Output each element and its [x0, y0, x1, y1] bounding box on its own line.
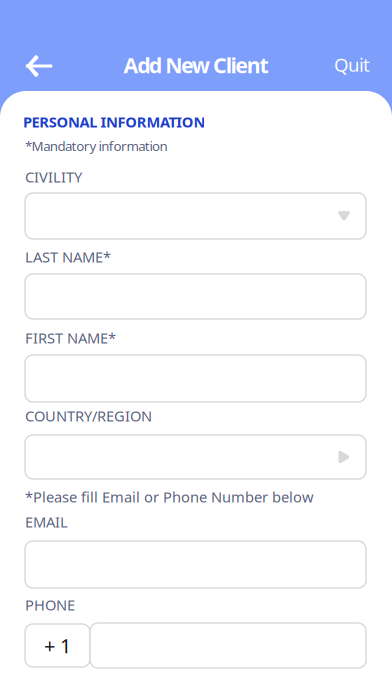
staticText: LAST NAME*	[25, 247, 111, 266]
staticText: CIVILITY	[25, 167, 82, 186]
staticText: FIRST NAME*	[25, 328, 116, 347]
staticText: *Please fill Email or Phone Number below	[25, 487, 314, 506]
staticText: EMAIL	[25, 512, 68, 531]
staticText: *Mandatory information	[25, 137, 168, 155]
staticText: + 1	[44, 632, 71, 659]
staticText: COUNTRY/REGION	[25, 406, 152, 425]
button[interactable]: Back	[0, 42, 68, 90]
staticText: PHONE	[25, 595, 75, 614]
button[interactable]: Quit	[320, 42, 384, 87]
staticText: Add New Client	[123, 51, 268, 79]
staticText: PERSONAL INFORMATION	[23, 112, 205, 131]
staticText: Quit	[334, 52, 370, 77]
